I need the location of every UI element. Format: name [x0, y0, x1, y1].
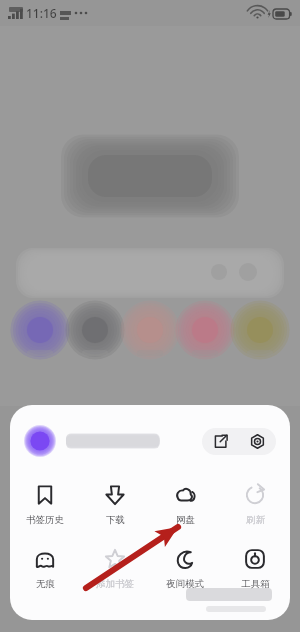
- staticText: 11:16: [26, 5, 57, 21]
- staticText: 添加书签: [96, 578, 134, 590]
- staticText: 下载: [106, 514, 125, 526]
- button[interactable]: 刷新: [220, 481, 290, 528]
- staticText: 网盘: [176, 514, 195, 526]
- button[interactable]: Share: [202, 428, 238, 455]
- staticText: 书签历史: [26, 514, 64, 526]
- button[interactable]: Account avatar: [24, 425, 56, 457]
- button[interactable]: 无痕: [10, 545, 80, 592]
- button[interactable]: 书签历史: [10, 481, 80, 528]
- staticText: 刷新: [246, 514, 265, 526]
- button[interactable]: 工具箱: [220, 545, 290, 592]
- button[interactable]: 夜间模式: [150, 545, 220, 592]
- button[interactable]: Settings: [238, 428, 276, 455]
- button[interactable]: User name: [66, 434, 196, 448]
- button[interactable]: 下载: [80, 481, 150, 528]
- button[interactable]: 添加书签: [80, 545, 150, 592]
- staticText: 工具箱: [241, 578, 270, 590]
- button[interactable]: 网盘: [150, 481, 220, 528]
- staticText: 夜间模式: [166, 578, 204, 590]
- staticText: 无痕: [36, 578, 55, 590]
